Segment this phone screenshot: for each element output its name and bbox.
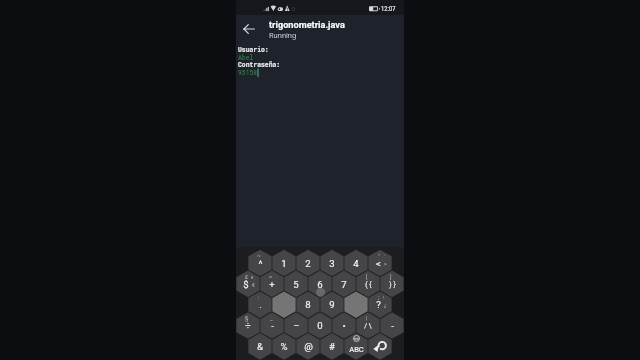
staticText: : [258, 294, 260, 301]
staticText: • [342, 320, 346, 331]
staticText: # [329, 341, 335, 352]
button[interactable]: 1 [272, 250, 296, 277]
staticText: 95158 [238, 68, 258, 76]
staticText: Running [269, 31, 297, 40]
staticText: 6 [317, 279, 323, 290]
staticText: 9 [329, 299, 335, 310]
button[interactable] [344, 291, 368, 318]
button[interactable]: 3 [320, 250, 344, 277]
staticText: 5 [293, 279, 299, 290]
button[interactable]: – [284, 312, 308, 339]
button[interactable]: 4 [344, 250, 368, 277]
staticText: ! [383, 295, 385, 300]
staticText: ~ [257, 253, 261, 260]
staticText: ^ [258, 258, 263, 269]
button[interactable]: 0 [308, 312, 332, 339]
button[interactable]: < [368, 250, 392, 277]
staticText: Abel [238, 53, 254, 61]
button[interactable]: @ [296, 333, 320, 360]
button[interactable]: • [332, 312, 356, 339]
staticText: - [391, 320, 394, 331]
staticText: 2 [305, 258, 311, 269]
button[interactable]: ( { [356, 271, 380, 298]
staticText: ABC [349, 345, 364, 354]
staticText: – [293, 320, 300, 331]
staticText: Contraseña: [238, 60, 281, 68]
staticText: ? [376, 299, 381, 310]
staticText: . [259, 299, 262, 310]
button[interactable]: 5 [284, 271, 308, 298]
staticText: Usuario: [238, 45, 269, 53]
button[interactable]: / \ [356, 312, 380, 339]
staticText: / \ [364, 322, 372, 330]
button[interactable]: $ [236, 271, 260, 298]
button[interactable]: - [380, 312, 404, 339]
button[interactable]: ^ [248, 250, 272, 277]
staticText: 0 [317, 320, 323, 331]
staticText: € [252, 282, 255, 288]
staticText: ¥ [251, 275, 254, 280]
staticText: 4 [353, 258, 359, 269]
button[interactable]: ? [368, 291, 392, 318]
button[interactable]: ÷ [236, 312, 260, 339]
staticText: @ [304, 341, 313, 352]
staticText: " [378, 253, 380, 260]
staticText: $ [243, 279, 249, 290]
staticText: 3 [329, 258, 335, 269]
staticText: trigonometria.java [269, 19, 345, 30]
button[interactable]: + [260, 271, 284, 298]
button[interactable]: % [272, 333, 296, 360]
staticText: % [280, 341, 288, 352]
staticText: - [271, 320, 274, 331]
staticText: = [269, 274, 273, 281]
staticText: § [245, 315, 249, 322]
button[interactable]: & [248, 333, 272, 360]
staticText: + [269, 279, 275, 290]
staticText: ' [384, 254, 385, 259]
button[interactable]: Back [242, 22, 256, 36]
staticText: ] [390, 274, 392, 281]
button[interactable]: - [260, 312, 284, 339]
staticText: £ [245, 274, 249, 281]
button[interactable]: Switch to letters [344, 333, 368, 360]
button[interactable]: ) } [380, 271, 404, 298]
staticText: ; [378, 294, 380, 301]
button[interactable]: Enter [368, 333, 392, 360]
staticText: 7 [341, 279, 347, 290]
staticText: 12:07 [381, 5, 396, 13]
staticText: > [384, 261, 387, 267]
button[interactable]: 2 [296, 250, 320, 277]
button[interactable]: . [248, 291, 272, 318]
staticText: 8 [305, 299, 311, 310]
button[interactable]: 6 [308, 271, 332, 298]
staticText: ( { [365, 281, 372, 289]
button[interactable]: 7 [332, 271, 356, 298]
staticText: [ [366, 274, 368, 281]
staticText: | [366, 315, 368, 322]
staticText: < [376, 258, 381, 269]
staticText: _ [270, 315, 273, 322]
staticText: 1 [281, 258, 287, 269]
button[interactable]: 9 [320, 291, 344, 318]
staticText: & [257, 341, 263, 352]
button[interactable]: 8 [296, 291, 320, 318]
staticText: ÷ [245, 320, 251, 331]
staticText: ¿ [384, 302, 387, 308]
button[interactable]: # [320, 333, 344, 360]
button[interactable] [272, 291, 296, 318]
staticText: ) } [389, 281, 396, 289]
